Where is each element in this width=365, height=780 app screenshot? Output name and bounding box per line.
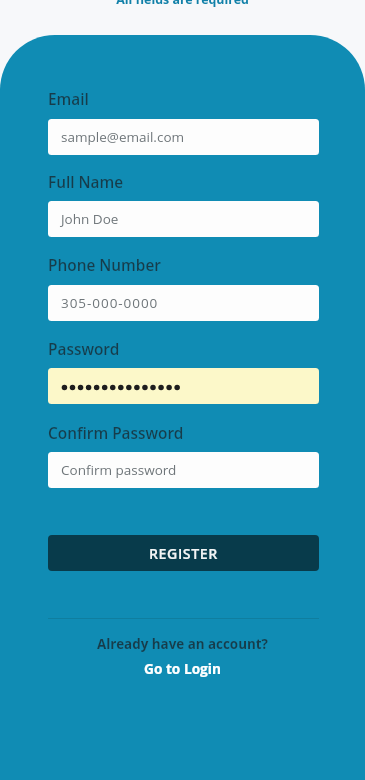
button[interactable]: 305-000-0000 xyxy=(48,285,319,321)
staticText: Full Name xyxy=(48,172,124,193)
staticText: Confirm password xyxy=(61,461,177,479)
staticText: Confirm Password xyxy=(48,423,184,444)
staticText: All fields are required xyxy=(0,0,365,8)
button[interactable]: sample@email.com xyxy=(48,119,319,155)
button[interactable]: REGISTER xyxy=(48,535,319,571)
staticText: Already have an account? xyxy=(0,635,365,653)
button[interactable]: Password xyxy=(48,368,319,404)
staticText: Password xyxy=(48,339,120,360)
staticText: John Doe xyxy=(61,210,119,228)
staticText: REGISTER xyxy=(149,544,218,563)
button[interactable]: John Doe xyxy=(48,201,319,237)
button[interactable]: Go to Login xyxy=(0,659,365,678)
button[interactable]: Confirm password xyxy=(48,452,319,488)
staticText: Email xyxy=(48,89,89,110)
staticText: Phone Number xyxy=(48,255,161,276)
staticText: Go to Login xyxy=(0,659,365,678)
staticText: sample@email.com xyxy=(61,128,185,146)
staticText: 305-000-0000 xyxy=(61,294,159,312)
